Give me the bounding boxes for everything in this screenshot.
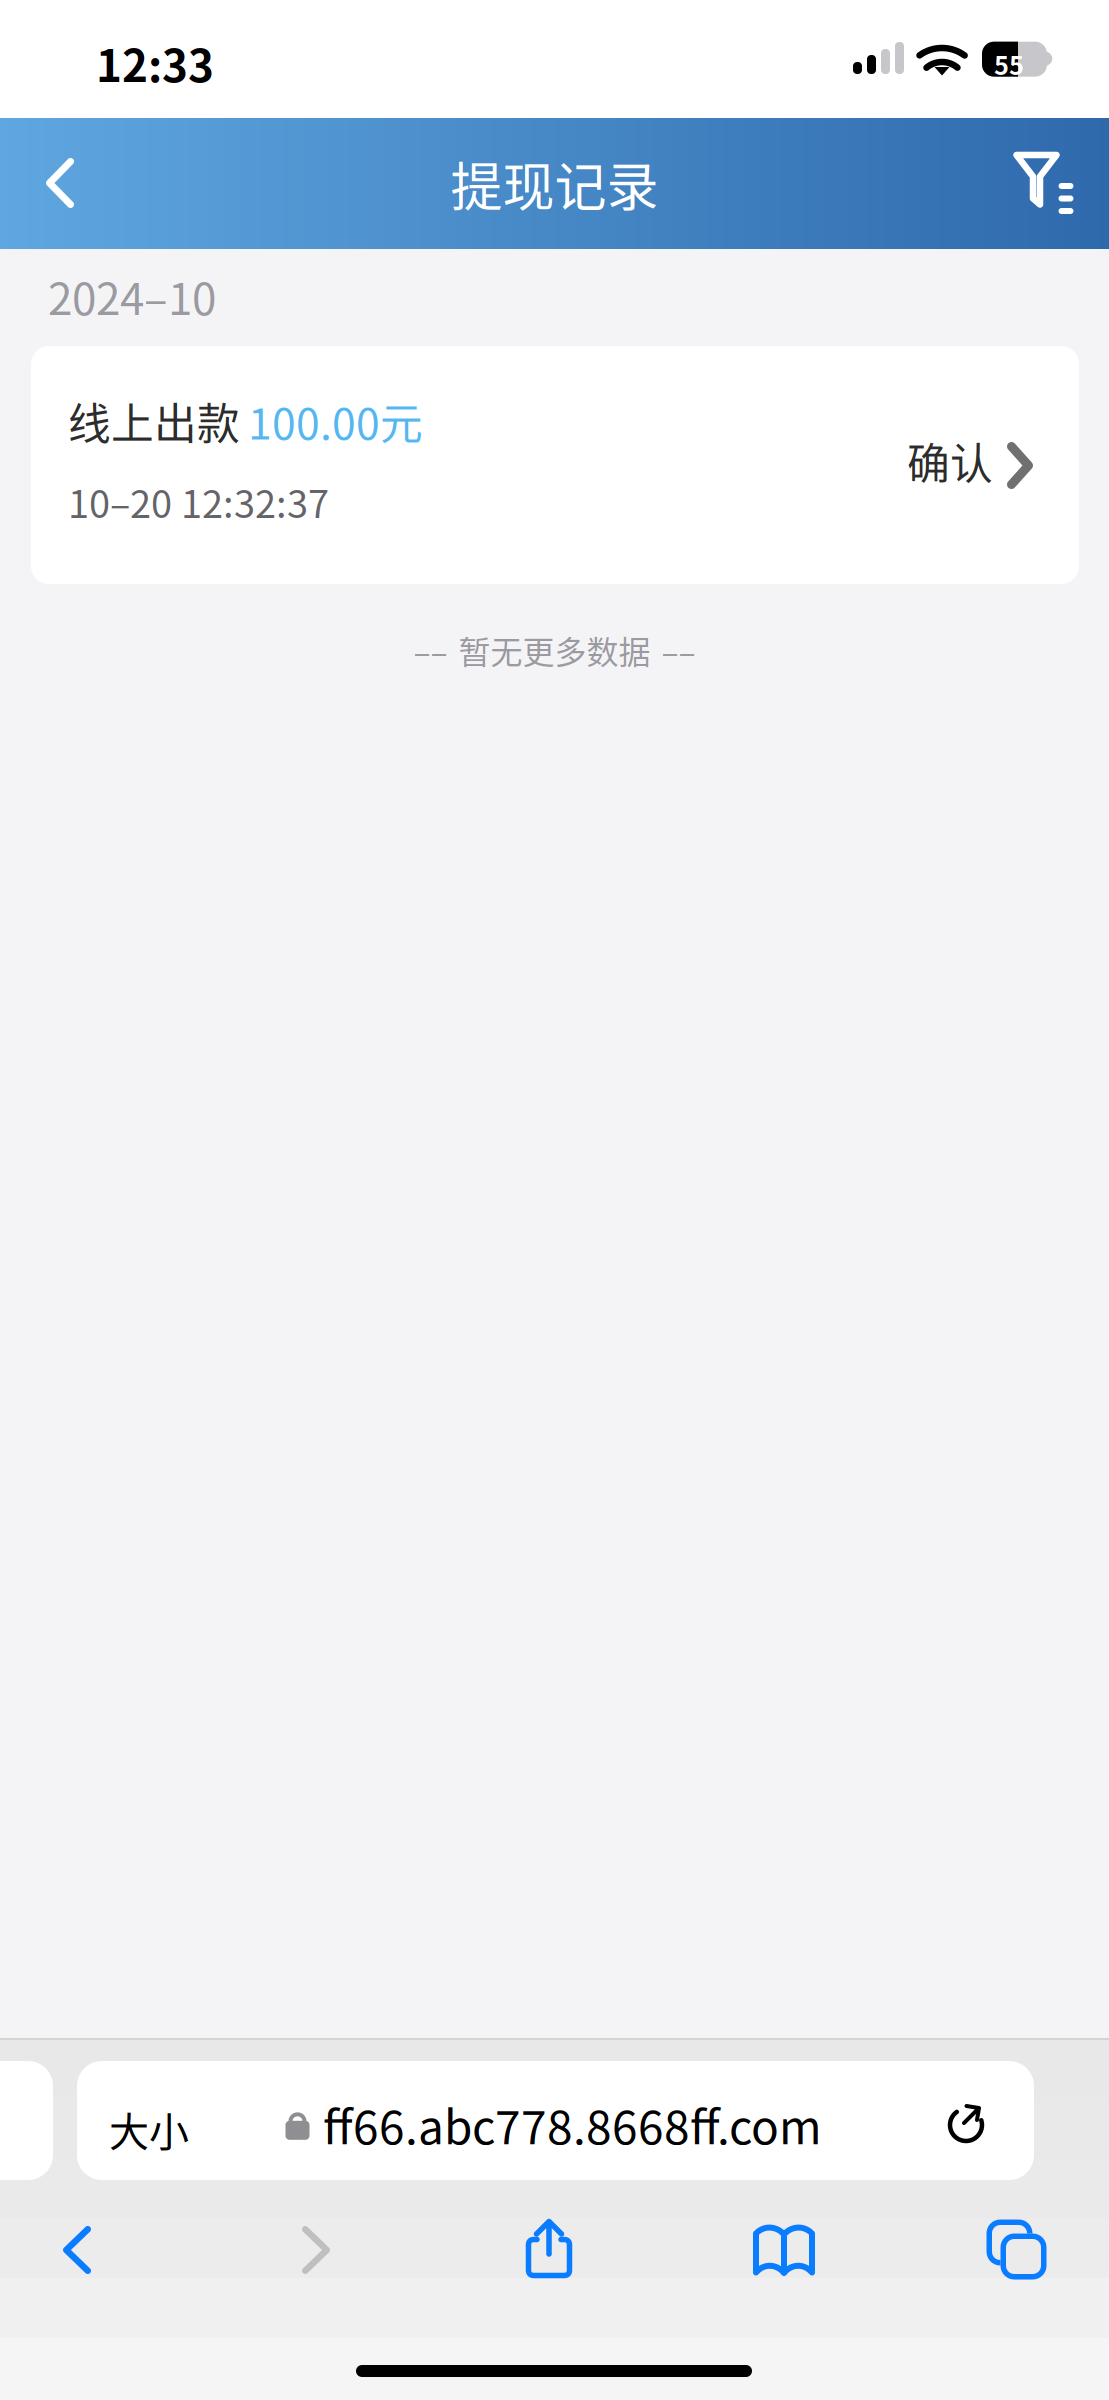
button[interactable]: Filter bbox=[979, 118, 1109, 249]
staticText: 55 bbox=[994, 46, 1024, 82]
button[interactable]: Back bbox=[0, 2195, 156, 2305]
staticText: 10–20 12:32:37 bbox=[68, 474, 329, 529]
staticText: 12:33 bbox=[96, 31, 214, 95]
staticText: ff66.abc778.8668ff.com bbox=[323, 2091, 822, 2158]
button[interactable]: Bookmarks bbox=[705, 2195, 863, 2305]
staticText: 100.00元 bbox=[248, 390, 423, 452]
staticText: 确认 bbox=[907, 430, 993, 492]
staticText: 2024–10 bbox=[48, 264, 216, 328]
staticText: –– bbox=[413, 627, 447, 673]
button[interactable]: Share bbox=[470, 2195, 628, 2305]
staticText: 暂无更多数据 bbox=[458, 627, 650, 673]
staticText: 大小 bbox=[109, 2100, 189, 2158]
button[interactable]: Back bbox=[0, 118, 120, 249]
staticText: 线上出款 bbox=[68, 390, 240, 452]
button[interactable]: Tabs bbox=[938, 2195, 1096, 2305]
button[interactable]: 大小 bbox=[77, 2061, 1034, 2180]
staticText: –– bbox=[661, 627, 695, 673]
button[interactable]: Forward bbox=[237, 2195, 395, 2305]
button[interactable]: 线上出款 bbox=[31, 346, 1079, 584]
staticText: 提现记录 bbox=[450, 146, 658, 221]
